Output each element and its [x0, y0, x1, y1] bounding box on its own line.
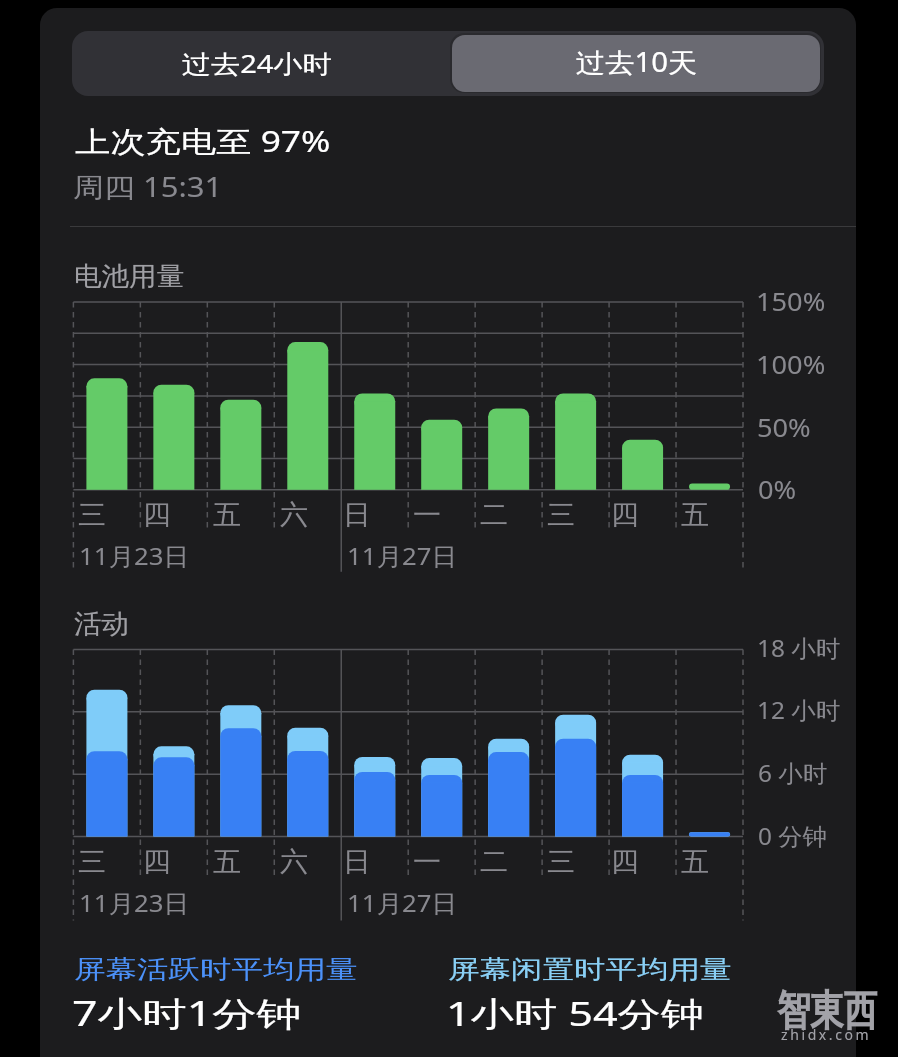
staticText: 三: [547, 845, 576, 879]
staticText: 五: [213, 845, 242, 879]
staticText: 150%: [756, 283, 826, 318]
staticText: 上次充电至 97%: [75, 121, 331, 160]
staticText: 1小时 54分钟: [446, 990, 705, 1036]
staticText: 日: [343, 498, 372, 532]
staticText: 六: [280, 845, 309, 879]
staticText: 50%: [757, 409, 811, 444]
staticText: 四: [143, 498, 172, 532]
staticText: 四: [611, 845, 640, 879]
staticText: 11月27日: [347, 887, 458, 920]
staticText: 6 小时: [758, 757, 828, 789]
staticText: 二: [480, 498, 509, 532]
staticText: 三: [78, 845, 107, 879]
staticText: 0%: [758, 471, 797, 506]
staticText: zhidx.com: [781, 1025, 872, 1044]
staticText: 四: [611, 498, 640, 532]
staticText: 18 小时: [757, 632, 841, 664]
staticText: 五: [681, 498, 710, 532]
staticText: 五: [213, 498, 242, 532]
staticText: 11月23日: [79, 887, 190, 920]
staticText: 11月27日: [347, 540, 458, 573]
staticText: 四: [143, 845, 172, 879]
staticText: 11月23日: [79, 540, 190, 573]
staticText: 二: [480, 845, 509, 879]
staticText: 活动: [74, 607, 130, 641]
staticText: 过去10天: [576, 44, 698, 80]
staticText: 周四 15:31: [73, 168, 223, 204]
staticText: 智東西: [777, 984, 877, 1037]
staticText: 六: [280, 498, 309, 532]
staticText: 屏幕闲置时平均用量: [448, 954, 732, 986]
staticText: 100%: [756, 346, 826, 381]
button[interactable]: 过去10天: [452, 35, 820, 92]
staticText: 电池用量: [74, 260, 185, 293]
staticText: 三: [547, 498, 576, 532]
staticText: 五: [681, 845, 710, 879]
staticText: 12 小时: [757, 694, 841, 726]
staticText: 0 分钟: [758, 820, 828, 852]
staticText: 7小时1分钟: [72, 990, 302, 1036]
button[interactable]: 过去24小时: [72, 31, 448, 96]
staticText: 三: [78, 498, 107, 532]
staticText: 屏幕活跃时平均用量: [74, 954, 358, 986]
staticText: 一: [413, 498, 442, 532]
staticText: 一: [413, 845, 442, 879]
staticText: 过去24小时: [182, 46, 332, 80]
staticText: 日: [343, 845, 372, 879]
